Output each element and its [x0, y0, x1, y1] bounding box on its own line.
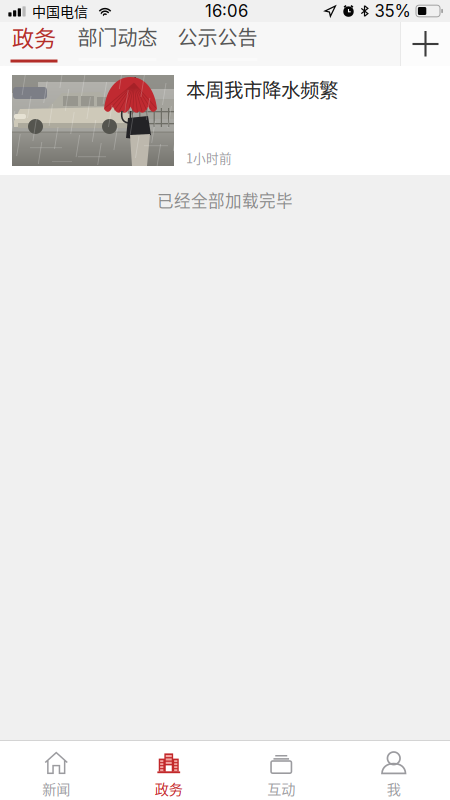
staticText: 公示公告	[177, 22, 257, 51]
button[interactable]: 互动	[225, 741, 337, 800]
staticText: 已经全部加载完毕	[157, 188, 293, 212]
button[interactable]: 本周我市降水频繁	[0, 66, 450, 175]
button[interactable]: 部门动态	[68, 22, 167, 66]
staticText: 本周我市降水频繁	[186, 75, 338, 103]
staticText: 1小时前	[186, 149, 232, 167]
staticText: 部门动态	[77, 22, 157, 51]
staticText: 政务	[155, 778, 183, 798]
staticText: 我	[387, 778, 401, 798]
button[interactable]: 我	[337, 741, 450, 800]
button[interactable]: 公示公告	[167, 22, 268, 66]
staticText: 互动	[267, 778, 295, 798]
staticText: 新闻	[42, 778, 70, 798]
button[interactable]: 政务	[112, 741, 225, 800]
staticText: 16:06	[205, 1, 248, 21]
button[interactable]: 政务	[0, 22, 68, 66]
button[interactable]: Add	[401, 22, 450, 66]
staticText: 政务	[12, 20, 56, 52]
staticText: 中国电信	[32, 1, 88, 21]
button[interactable]: 新闻	[0, 741, 112, 800]
staticText: 35%	[374, 1, 410, 21]
